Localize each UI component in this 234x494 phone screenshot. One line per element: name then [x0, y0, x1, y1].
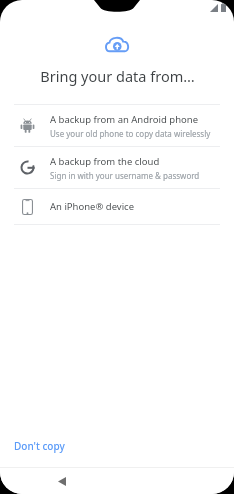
staticText: An iPhone® device: [50, 200, 135, 213]
staticText: Bring your data from…: [40, 66, 195, 86]
other: iPhone device: [22, 199, 33, 215]
staticText: Sign in with your username & password: [50, 170, 200, 181]
staticText: A backup from an Android phone: [50, 113, 199, 126]
button[interactable]: Don't copy: [8, 434, 71, 458]
staticText: A backup from the cloud: [50, 155, 160, 168]
other: Android phone: [20, 118, 35, 133]
other: Google account: [20, 160, 35, 175]
button[interactable]: Google account: [0, 147, 234, 188]
staticText: Use your old phone to copy data wireless…: [50, 128, 211, 139]
staticText: Don't copy: [14, 439, 65, 453]
button[interactable]: Back: [52, 471, 72, 491]
button[interactable]: Android phone: [0, 105, 234, 146]
button[interactable]: iPhone device: [0, 189, 234, 224]
